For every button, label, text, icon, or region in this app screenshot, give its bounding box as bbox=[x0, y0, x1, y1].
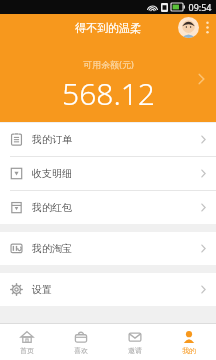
button[interactable]: More options bbox=[202, 17, 212, 38]
staticText: 收支明细 bbox=[32, 167, 72, 180]
button[interactable]: 首页 bbox=[0, 324, 54, 360]
staticText: 我的红包 bbox=[32, 201, 72, 214]
staticText: 我的订单 bbox=[32, 133, 72, 146]
button[interactable]: 喜欢 bbox=[54, 324, 108, 360]
button[interactable]: 我的订单 bbox=[0, 123, 216, 156]
button[interactable]: 我的淘宝 bbox=[0, 232, 216, 265]
button[interactable]: 收支明细 bbox=[0, 157, 216, 190]
button[interactable]: 我的红包 bbox=[0, 191, 216, 224]
button[interactable]: 邀请 bbox=[108, 324, 162, 360]
staticText: 568.12 bbox=[62, 73, 155, 114]
staticText: 喜欢 bbox=[74, 346, 88, 355]
button[interactable]: Profile avatar bbox=[178, 17, 199, 38]
staticText: 得不到的温柔 bbox=[75, 21, 141, 35]
staticText: 我的淘宝 bbox=[32, 242, 72, 255]
staticText: 首页 bbox=[20, 346, 34, 355]
staticText: 可用余额(元) bbox=[83, 58, 134, 70]
button[interactable]: 设置 bbox=[0, 273, 216, 306]
staticText: 我的 bbox=[182, 346, 196, 355]
button[interactable]: 我的 bbox=[162, 324, 216, 360]
button[interactable]: Balance details bbox=[192, 70, 210, 88]
staticText: 09:54 bbox=[188, 1, 212, 13]
staticText: 邀请 bbox=[128, 346, 142, 355]
staticText: 设置 bbox=[32, 283, 52, 296]
